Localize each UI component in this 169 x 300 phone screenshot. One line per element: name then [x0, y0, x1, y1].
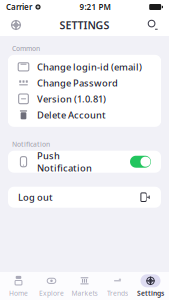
- staticText: Log out: [18, 191, 53, 203]
- button[interactable]: Log out: [8, 187, 161, 208]
- button[interactable]: Markets: [68, 272, 101, 300]
- staticText: 9:21 PM: [80, 2, 111, 12]
- button[interactable]: Home: [2, 272, 35, 300]
- staticText: Notification: [12, 140, 50, 149]
- staticText: Markets: [71, 289, 97, 298]
- button[interactable]: Delete Account: [8, 107, 161, 123]
- button[interactable]: Search: [143, 15, 163, 35]
- staticText: Home: [9, 289, 28, 298]
- staticText: Version (1.0.81): [37, 93, 106, 105]
- staticText: Delete Account: [37, 109, 106, 121]
- button[interactable]: Version (1.0.81): [8, 91, 161, 107]
- staticText: Settings: [137, 289, 164, 298]
- button[interactable]: Trends: [101, 272, 134, 300]
- staticText: Trends: [107, 289, 128, 298]
- staticText: SETTINGS: [59, 18, 109, 32]
- button[interactable]: Change login-id (email): [8, 59, 161, 75]
- button[interactable]: Settings: [134, 272, 167, 300]
- staticText: Explore: [39, 289, 64, 298]
- staticText: Carrier: [6, 2, 32, 12]
- button[interactable]: Push Notification: [8, 151, 161, 173]
- button[interactable]: Settings menu: [6, 15, 26, 35]
- button[interactable]: Explore: [35, 272, 68, 300]
- button[interactable]: Change Password: [8, 75, 161, 91]
- staticText: Change login-id (email): [37, 61, 142, 73]
- staticText: Common: [12, 44, 40, 53]
- staticText: Change Password: [37, 77, 118, 89]
- staticText: Push Notification: [37, 149, 92, 174]
